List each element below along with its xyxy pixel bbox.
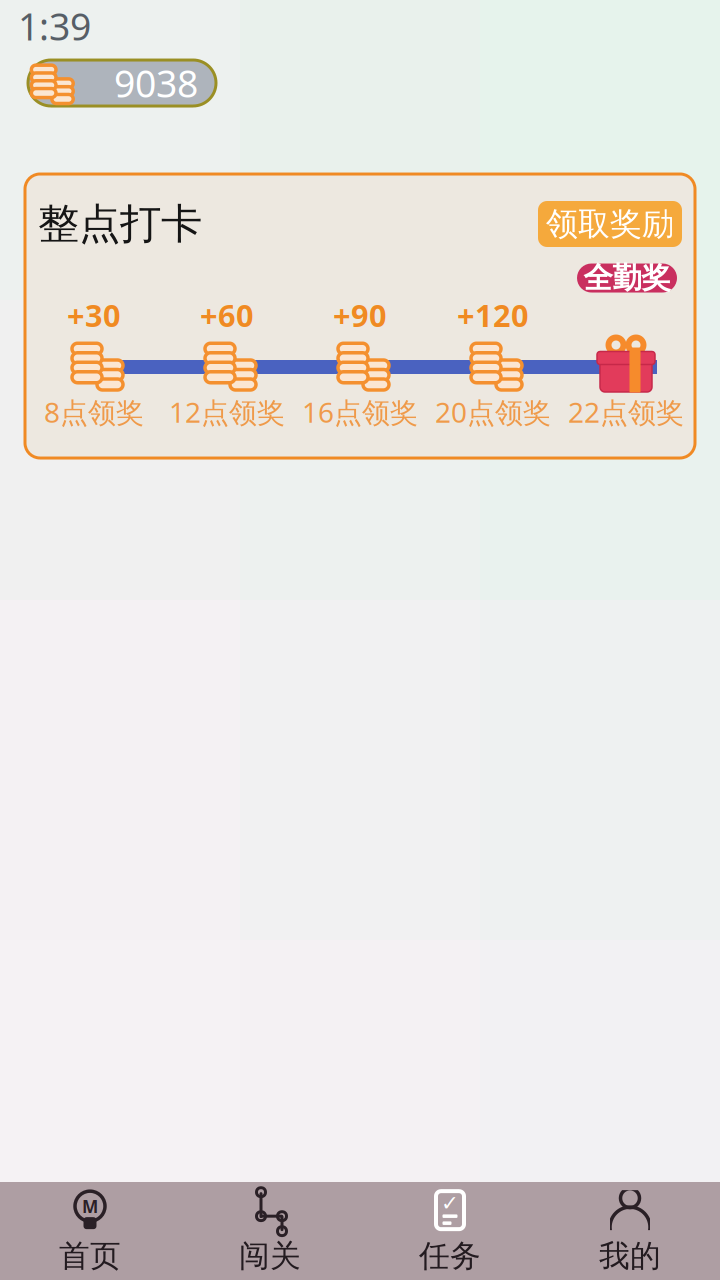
staticText: M bbox=[82, 1195, 98, 1218]
staticText: 16点领奖 bbox=[302, 393, 418, 431]
staticText: 全勤奖 bbox=[583, 260, 670, 296]
staticText: 22点领奖 bbox=[568, 393, 684, 431]
button[interactable]: 金币 9038 bbox=[22, 55, 222, 111]
staticText: 8点领奖 bbox=[44, 393, 144, 431]
button[interactable]: 我的 bbox=[540, 1182, 720, 1280]
staticText: +90 bbox=[333, 295, 387, 335]
staticText: 闯关 bbox=[239, 1237, 301, 1275]
staticText: 12点领奖 bbox=[169, 393, 285, 431]
staticText: 整点打卡 bbox=[38, 199, 202, 249]
staticText: ✓ bbox=[441, 1191, 459, 1215]
staticText: 1:39 bbox=[18, 1, 91, 51]
button[interactable]: 22点领奖 bbox=[559, 301, 692, 425]
button[interactable]: +90 bbox=[293, 301, 426, 425]
button[interactable]: ✓ bbox=[360, 1182, 540, 1280]
staticText: +120 bbox=[457, 295, 529, 335]
staticText: +30 bbox=[67, 295, 121, 335]
staticText: 首页 bbox=[59, 1237, 121, 1275]
button[interactable]: 闯关 bbox=[180, 1182, 360, 1280]
staticText: 领取奖励 bbox=[546, 204, 674, 244]
staticText: 20点领奖 bbox=[435, 393, 551, 431]
staticText: +60 bbox=[200, 295, 254, 335]
button[interactable]: M bbox=[0, 1182, 180, 1280]
staticText: 9038 bbox=[114, 58, 198, 108]
button[interactable]: 全勤奖 bbox=[577, 263, 677, 292]
button[interactable]: +30 bbox=[27, 301, 160, 425]
button[interactable]: +60 bbox=[160, 301, 293, 425]
button[interactable]: +120 bbox=[426, 301, 559, 425]
button[interactable]: 领取奖励 bbox=[538, 201, 682, 247]
staticText: 任务 bbox=[419, 1237, 481, 1275]
staticText: 我的 bbox=[599, 1237, 661, 1275]
